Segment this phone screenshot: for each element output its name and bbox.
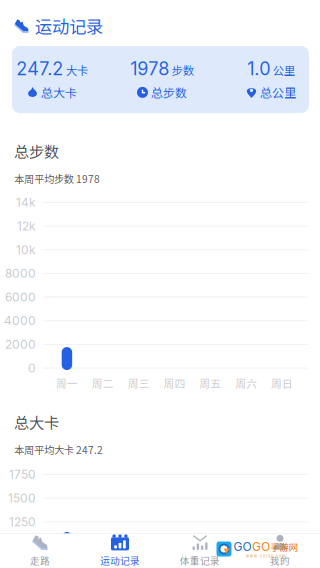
staticText: 0 bbox=[28, 361, 36, 375]
staticText: 周日 bbox=[271, 375, 293, 391]
staticText: 周四 bbox=[163, 375, 185, 391]
staticText: 周一 bbox=[56, 375, 78, 391]
staticText: GO bbox=[233, 539, 251, 554]
staticText: 总大卡 bbox=[14, 411, 59, 433]
staticText: 12k bbox=[17, 219, 36, 233]
staticText: 1.0 bbox=[247, 58, 270, 80]
staticText: 本周平均大卡 247.2 bbox=[14, 442, 103, 457]
staticText: 周五 bbox=[199, 375, 221, 391]
staticText: 运动记录 bbox=[100, 553, 140, 567]
staticText: 4000 bbox=[4, 313, 36, 328]
staticText: 周二 bbox=[92, 375, 114, 391]
staticText: 2000 bbox=[5, 337, 36, 352]
staticText: 1250 bbox=[9, 515, 36, 529]
staticText: 247.2 bbox=[16, 58, 63, 80]
staticText: 公里 bbox=[273, 62, 295, 78]
staticText: 周六 bbox=[235, 375, 257, 391]
button[interactable]: 运动记录 bbox=[80, 534, 160, 568]
staticText: w w w . c o r o o . c o m bbox=[246, 554, 285, 558]
staticText: 14k bbox=[16, 195, 36, 210]
staticText: 8000 bbox=[5, 266, 36, 281]
staticText: 步数 bbox=[172, 62, 194, 78]
staticText: 总大卡 bbox=[41, 84, 77, 101]
button[interactable]: 运动记录 bbox=[14, 11, 306, 41]
staticText: 大卡 bbox=[66, 62, 88, 78]
staticText: 总公里 bbox=[260, 84, 296, 101]
staticText: 1500 bbox=[8, 491, 36, 505]
staticText: 6000 bbox=[5, 290, 36, 304]
staticText: 手游网 bbox=[270, 540, 297, 553]
button[interactable]: 体重记录 bbox=[160, 534, 240, 568]
staticText: 总步数 bbox=[151, 84, 187, 101]
staticText: 走路 bbox=[30, 553, 50, 567]
staticText: 1750 bbox=[9, 467, 36, 482]
staticText: 10k bbox=[16, 242, 36, 257]
staticText: 1978 bbox=[130, 58, 169, 80]
staticText: 运动记录 bbox=[35, 13, 103, 39]
staticText: 我的 bbox=[270, 553, 290, 567]
staticText: GO bbox=[252, 539, 270, 554]
staticText: 本周平均步数 1978 bbox=[14, 171, 100, 186]
button[interactable]: 我的 bbox=[240, 534, 320, 568]
staticText: 体重记录 bbox=[180, 553, 220, 567]
staticText: 周三 bbox=[128, 375, 150, 391]
button[interactable]: 走路 bbox=[0, 534, 80, 568]
staticText: 总步数 bbox=[14, 140, 59, 162]
